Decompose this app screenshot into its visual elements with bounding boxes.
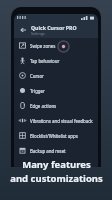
staticText: Tap behaviour: [30, 58, 60, 64]
button[interactable]: Edge actions: [14, 98, 98, 113]
button[interactable]: Trigger: [14, 83, 98, 98]
button[interactable]: Blocklist/Whitelist apps: [14, 128, 98, 143]
staticText: Settings: [31, 31, 45, 36]
button[interactable]: Vibrations and visual feedback: [14, 113, 98, 128]
button[interactable]: Back: [17, 24, 28, 35]
staticText: Swipe zones: [30, 43, 56, 49]
staticText: Trigger: [30, 88, 45, 94]
staticText: Quick Cursor PRO: [31, 24, 77, 31]
staticText: Edge actions: [30, 103, 57, 109]
staticText: Backup and reset: [30, 148, 66, 154]
button[interactable]: Swipe zones: [14, 38, 98, 53]
staticText: Cursor: [30, 73, 44, 79]
staticText: Vibrations and visual feedback: [30, 118, 93, 124]
staticText: Many features: [22, 158, 91, 171]
button[interactable]: Backup and reset: [14, 143, 98, 158]
staticText: Blocklist/Whitelist apps: [30, 133, 78, 139]
button[interactable]: Tap behaviour: [14, 53, 98, 68]
button[interactable]: Cursor: [14, 68, 98, 83]
staticText: and customizations: [10, 172, 103, 185]
